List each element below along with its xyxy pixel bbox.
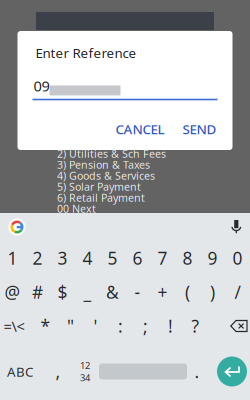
staticText: 1 xyxy=(7,246,17,269)
staticText: $ xyxy=(57,280,67,303)
staticText: ; xyxy=(143,314,148,337)
staticText: 12 xyxy=(80,359,90,371)
button[interactable]: - xyxy=(125,277,150,307)
button[interactable]: CANCEL xyxy=(115,120,164,138)
button[interactable]: Enter xyxy=(215,354,249,388)
button[interactable]: # xyxy=(25,277,50,307)
staticText: ) xyxy=(210,280,215,303)
staticText: : xyxy=(118,314,123,337)
staticText: " xyxy=(67,314,74,337)
staticText: _ xyxy=(83,280,91,303)
button[interactable]: 6 xyxy=(125,243,150,273)
staticText: 4) Goods & Services xyxy=(57,168,155,183)
button[interactable]: ? xyxy=(183,311,208,341)
button[interactable]: 3 xyxy=(50,243,75,273)
staticText: ' xyxy=(93,314,97,337)
button[interactable]: Numbers xyxy=(71,356,99,386)
button[interactable]: ! xyxy=(158,311,183,341)
staticText: SEND xyxy=(182,120,216,138)
staticText: ( xyxy=(185,280,190,303)
button[interactable]: 1 xyxy=(0,243,25,273)
button[interactable]: Space xyxy=(99,363,187,379)
button[interactable]: . xyxy=(187,356,207,386)
staticText: 4 xyxy=(82,246,92,269)
button[interactable]: / xyxy=(225,277,250,307)
staticText: 0 xyxy=(232,246,242,269)
button[interactable]: ) xyxy=(200,277,225,307)
button[interactable]: * xyxy=(33,311,58,341)
staticText: CANCEL xyxy=(115,120,164,138)
staticText: 3) Pension & Taxes xyxy=(57,157,150,172)
button[interactable]: =\< xyxy=(0,311,33,341)
button[interactable]: Backspace xyxy=(223,311,250,341)
button[interactable]: 0 xyxy=(225,243,250,273)
staticText: , xyxy=(55,360,60,383)
staticText: / xyxy=(234,280,240,303)
staticText: 3 xyxy=(57,246,67,269)
staticText: 09 xyxy=(33,76,49,95)
staticText: & xyxy=(106,280,119,303)
button[interactable]: 7 xyxy=(150,243,175,273)
staticText: 5) Solar Payment xyxy=(57,179,141,194)
staticText: 2 xyxy=(32,246,42,269)
button[interactable]: _ xyxy=(75,277,100,307)
staticText: =\< xyxy=(3,316,24,336)
button[interactable]: & xyxy=(100,277,125,307)
staticText: 9 xyxy=(207,246,217,269)
staticText: ! xyxy=(168,314,173,337)
button[interactable]: ( xyxy=(175,277,200,307)
button[interactable]: " xyxy=(58,311,83,341)
staticText: 6 xyxy=(132,246,142,269)
button[interactable]: 2 xyxy=(25,243,50,273)
staticText: 8 xyxy=(182,246,192,269)
staticText: 34 xyxy=(80,371,90,384)
staticText: @ xyxy=(4,280,20,303)
staticText: ABC xyxy=(7,363,33,380)
staticText: 2) Utilities & Sch Fees xyxy=(57,146,166,161)
button[interactable]: : xyxy=(108,311,133,341)
button[interactable]: 8 xyxy=(175,243,200,273)
button[interactable]: SEND xyxy=(182,120,216,138)
staticText: - xyxy=(134,280,140,303)
staticText: 5 xyxy=(107,246,117,269)
staticText: # xyxy=(32,280,43,303)
button[interactable]: , xyxy=(45,356,71,386)
button[interactable]: ' xyxy=(83,311,108,341)
button[interactable]: @ xyxy=(0,277,25,307)
staticText: 6) Retail Payment xyxy=(57,190,145,205)
staticText: Enter Reference xyxy=(35,44,136,62)
staticText: + xyxy=(157,280,167,303)
button[interactable]: ABC xyxy=(0,356,45,386)
button[interactable]: Voice input xyxy=(229,219,244,235)
button[interactable]: Google xyxy=(8,218,26,236)
button[interactable]: 9 xyxy=(200,243,225,273)
button[interactable]: 5 xyxy=(100,243,125,273)
staticText: * xyxy=(40,314,50,337)
staticText: 7 xyxy=(157,246,167,269)
button[interactable]: 4 xyxy=(75,243,100,273)
button[interactable]: + xyxy=(150,277,175,307)
button[interactable]: $ xyxy=(50,277,75,307)
staticText: . xyxy=(194,360,199,383)
staticText: 00 Next xyxy=(57,201,96,216)
button[interactable]: ; xyxy=(133,311,158,341)
staticText: ? xyxy=(191,314,199,337)
